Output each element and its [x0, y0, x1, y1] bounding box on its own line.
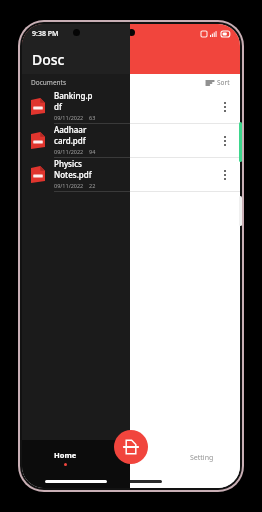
staticText: 9:38 PM	[32, 29, 59, 39]
staticText: 223 kB	[89, 182, 97, 191]
button[interactable]: More options	[22, 90, 240, 124]
staticText: 09/11/2022	[54, 182, 84, 189]
staticText: 09/11/2022	[54, 114, 84, 121]
button[interactable]: Home	[54, 450, 77, 466]
staticText: Documents	[31, 78, 67, 87]
staticText: 9:38 PM	[32, 29, 59, 39]
staticText: Home	[54, 450, 77, 460]
button[interactable]: Aadhaar card.pdf	[22, 124, 130, 158]
staticText: Physics Notes.pdf	[54, 158, 97, 180]
button[interactable]: More options	[219, 131, 231, 151]
staticText: Aadhaar card.pdf	[54, 124, 97, 146]
button[interactable]: More options	[22, 158, 240, 192]
staticText: 09/11/2022	[54, 148, 84, 155]
staticText: 94 kB	[89, 148, 97, 157]
button[interactable]: Physics Notes.pdf	[22, 158, 130, 192]
button[interactable]: Sort	[206, 78, 230, 87]
button[interactable]: Banking.pdf	[22, 90, 130, 124]
button[interactable]: Setting	[190, 453, 214, 463]
staticText: Dosc	[32, 50, 65, 69]
staticText: 637 kB	[89, 114, 97, 123]
button[interactable]: More options	[22, 124, 240, 158]
button[interactable]: More options	[219, 165, 231, 185]
button[interactable]: More options	[219, 97, 231, 117]
staticText: Banking.pdf	[54, 90, 97, 112]
button[interactable]: Scan document	[114, 430, 148, 464]
staticText: Sort	[217, 78, 230, 87]
